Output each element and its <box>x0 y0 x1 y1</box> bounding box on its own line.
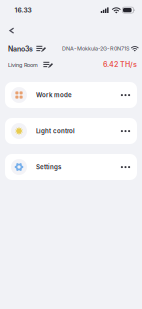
staticText: 16.33 <box>14 6 31 14</box>
staticText: Nano3s <box>8 45 33 53</box>
staticText: DNA-Mokkula-2G-R0N71S <box>62 45 130 52</box>
button[interactable]: Rename device <box>34 43 48 55</box>
button[interactable]: Rename room <box>41 59 55 71</box>
staticText: Living Room <box>8 62 38 68</box>
button[interactable]: Back <box>3 23 21 39</box>
staticText: Light control <box>36 127 75 135</box>
staticText: Settings <box>36 163 61 171</box>
button[interactable]: Work mode <box>5 82 137 108</box>
staticText: Work mode <box>36 91 72 99</box>
button[interactable]: Light control <box>5 118 137 144</box>
button[interactable]: Settings <box>5 154 137 180</box>
staticText: 6.42 TH/s <box>103 60 137 69</box>
